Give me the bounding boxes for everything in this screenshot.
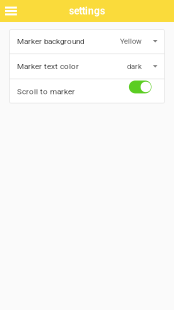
staticText: Marker background <box>17 37 85 46</box>
staticText: settings <box>69 5 105 17</box>
button[interactable]: Marker background <box>9 29 165 53</box>
staticText: Marker text color <box>17 62 79 71</box>
button[interactable]: Marker text color <box>9 54 165 79</box>
button[interactable]: Scroll to marker <box>9 79 165 104</box>
button[interactable]: Menu <box>0 0 24 22</box>
staticText: dark <box>127 62 142 71</box>
staticText: Yellow <box>120 37 142 46</box>
staticText: Scroll to marker <box>17 87 75 96</box>
